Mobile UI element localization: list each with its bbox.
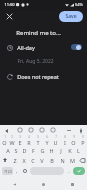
button[interactable]: Space <box>30 167 64 175</box>
staticText: Save <box>65 13 77 20</box>
button[interactable]: . <box>65 165 73 177</box>
staticText: N <box>60 157 65 164</box>
staticText: 7 <box>55 135 57 139</box>
button[interactable]: Tool 1 <box>27 126 35 134</box>
staticText: 1 <box>4 135 6 139</box>
button[interactable]: Z <box>10 155 19 165</box>
button[interactable]: 3 <box>16 135 24 145</box>
button[interactable]: 5 <box>33 135 42 145</box>
button[interactable]: Recents <box>58 178 87 190</box>
button[interactable]: A <box>4 145 12 155</box>
button[interactable]: 0 <box>78 135 87 145</box>
button[interactable]: Emoji <box>21 165 29 177</box>
staticText: V <box>40 157 44 164</box>
staticText: R <box>27 139 31 145</box>
staticText: C <box>31 157 35 164</box>
button[interactable]: Back <box>0 178 29 190</box>
staticText: ?123 <box>4 169 12 174</box>
button[interactable]: S <box>12 145 20 155</box>
staticText: A <box>6 147 10 154</box>
button[interactable]: N <box>57 155 67 165</box>
staticText: 0 <box>82 135 84 139</box>
button[interactable]: H <box>47 145 56 155</box>
button[interactable]: V <box>37 155 47 165</box>
staticText: 11:00 <box>4 2 15 7</box>
button[interactable]: Settings <box>77 127 84 134</box>
staticText: U <box>53 139 58 145</box>
button[interactable]: 7 <box>51 135 60 145</box>
staticText: 3 <box>19 135 21 139</box>
button[interactable]: Remind me to… <box>0 26 87 39</box>
staticText: F <box>32 147 35 154</box>
button[interactable]: Enter <box>73 167 85 175</box>
button[interactable]: 9 <box>69 135 78 145</box>
button[interactable]: Close <box>4 11 15 22</box>
staticText: S <box>14 147 18 154</box>
staticText: T <box>36 139 40 145</box>
button[interactable]: J <box>56 145 65 155</box>
button[interactable]: X <box>19 155 28 165</box>
button[interactable]: F <box>29 145 38 155</box>
staticText: All-day <box>17 44 35 51</box>
staticText: D <box>22 147 27 154</box>
staticText: . <box>68 168 70 175</box>
staticText: H <box>49 147 54 154</box>
button[interactable]: All-day <box>0 39 87 55</box>
staticText: Y <box>45 139 49 145</box>
staticText: W <box>9 139 15 145</box>
button[interactable]: B <box>47 155 57 165</box>
staticText: I <box>64 139 66 145</box>
staticText: 4 <box>28 135 30 139</box>
button[interactable]: Fri, Aug 5, 2022 <box>0 55 87 68</box>
button[interactable]: Does not repeat <box>0 68 87 84</box>
staticText: G <box>40 147 45 154</box>
button[interactable]: 4 <box>24 135 33 145</box>
button[interactable]: Tool 2 <box>38 126 46 134</box>
staticText: Z <box>13 157 17 164</box>
staticText: Fri, Aug 5, 2022 <box>17 58 54 65</box>
staticText: Remind me to… <box>16 29 61 37</box>
staticText: P <box>81 139 85 145</box>
button[interactable] <box>71 44 82 50</box>
staticText: X <box>22 157 26 164</box>
button[interactable]: 1 <box>0 135 8 145</box>
button[interactable]: 8 <box>60 135 69 145</box>
button[interactable]: Backspace <box>77 155 87 165</box>
staticText: L <box>77 147 80 154</box>
button[interactable]: L <box>74 145 83 155</box>
button[interactable]: Save <box>59 11 83 22</box>
button[interactable]: , <box>13 165 21 177</box>
button[interactable]: K <box>65 145 74 155</box>
button[interactable]: C <box>28 155 37 165</box>
button[interactable]: Expand toolbar <box>3 127 10 134</box>
button[interactable]: Tool 0 <box>16 126 24 134</box>
button[interactable]: G <box>38 145 47 155</box>
staticText: E <box>18 139 22 145</box>
staticText: 5 <box>37 135 39 139</box>
button[interactable]: M <box>67 155 77 165</box>
button[interactable]: ?123 <box>2 167 13 175</box>
button[interactable]: Tool 3 <box>49 126 57 134</box>
staticText: 6 <box>46 135 48 139</box>
staticText: M <box>70 157 75 164</box>
button[interactable]: D <box>20 145 29 155</box>
button[interactable]: 2 <box>8 135 16 145</box>
staticText: 8 <box>64 135 66 139</box>
button[interactable]: 6 <box>42 135 51 145</box>
staticText: 2 <box>11 135 13 139</box>
staticText: , <box>16 168 18 175</box>
staticText: Q <box>2 139 7 145</box>
staticText: K <box>68 147 72 154</box>
staticText: B <box>50 157 54 164</box>
staticText: O <box>71 139 76 145</box>
button[interactable]: Home <box>29 178 58 190</box>
staticText: 9 <box>73 135 75 139</box>
staticText: 54% <box>75 2 83 7</box>
button[interactable]: Shift <box>0 155 10 165</box>
staticText: J <box>60 147 62 154</box>
staticText: Does not repeat <box>17 73 59 80</box>
